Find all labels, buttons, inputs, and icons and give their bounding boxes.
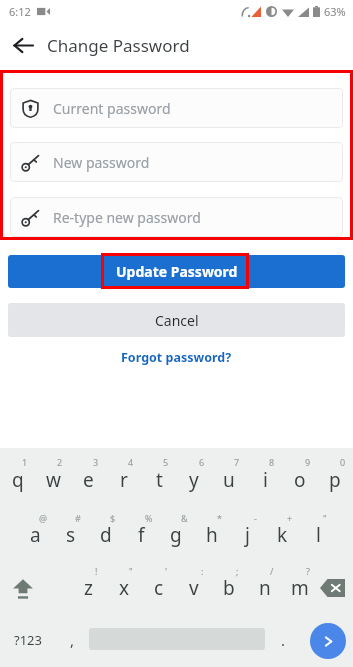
staticText: Update Password bbox=[116, 262, 238, 281]
staticText: ?123 bbox=[14, 631, 42, 649]
button[interactable]: Backspace bbox=[311, 565, 353, 611]
staticText: 0 bbox=[340, 456, 346, 468]
staticText: r bbox=[120, 467, 128, 493]
staticText: 7 bbox=[234, 456, 240, 468]
staticText: i bbox=[263, 467, 268, 493]
staticText: w bbox=[46, 467, 61, 493]
button[interactable]: Back bbox=[6, 28, 40, 62]
staticText: , bbox=[70, 630, 75, 650]
staticText: : bbox=[201, 565, 204, 577]
staticText: " bbox=[323, 512, 327, 524]
staticText: 9 bbox=[305, 456, 311, 468]
staticText: p bbox=[329, 467, 341, 493]
staticText: 63% bbox=[324, 4, 346, 19]
staticText: 3 bbox=[93, 456, 99, 468]
staticText: m bbox=[291, 575, 309, 601]
staticText: d bbox=[100, 522, 112, 548]
staticText: $ bbox=[110, 512, 116, 524]
button[interactable]: Shift bbox=[1, 565, 45, 611]
staticText: x bbox=[119, 575, 130, 601]
button[interactable]: Forgot password? bbox=[0, 346, 353, 368]
staticText: 6 bbox=[199, 456, 205, 468]
staticText: ' bbox=[165, 565, 168, 577]
button[interactable]: , bbox=[56, 618, 88, 662]
staticText: u bbox=[223, 467, 235, 493]
button[interactable]: Cancel bbox=[8, 303, 345, 337]
staticText: l bbox=[316, 522, 321, 548]
staticText: " bbox=[129, 565, 133, 577]
staticText: j bbox=[245, 522, 250, 548]
staticText: h bbox=[206, 522, 218, 548]
staticText: / bbox=[270, 565, 274, 577]
staticText: b bbox=[223, 575, 235, 601]
button[interactable]: . bbox=[266, 618, 300, 662]
staticText: ; bbox=[236, 565, 239, 577]
staticText: Forgot password? bbox=[121, 349, 232, 366]
staticText: 1 bbox=[22, 456, 28, 468]
staticText: z bbox=[84, 575, 93, 601]
staticText: k bbox=[277, 522, 288, 548]
staticText: 4 bbox=[128, 456, 134, 468]
staticText: y bbox=[189, 467, 199, 493]
staticText: Current password bbox=[53, 99, 171, 118]
staticText: g bbox=[170, 522, 182, 548]
button[interactable]: Re-type new password bbox=[10, 197, 343, 237]
button[interactable]: New password bbox=[10, 142, 343, 182]
button[interactable]: Update Password bbox=[8, 255, 345, 288]
staticText: f bbox=[138, 522, 145, 548]
staticText: n bbox=[259, 575, 271, 601]
staticText: c bbox=[154, 575, 164, 601]
staticText: v bbox=[189, 575, 199, 601]
staticText: @ bbox=[39, 512, 48, 524]
staticText: 6:12 bbox=[9, 4, 31, 19]
button[interactable]: Enter bbox=[310, 623, 346, 659]
button[interactable]: ?123 bbox=[2, 618, 54, 662]
staticText: Change Password bbox=[47, 34, 190, 57]
staticText: s bbox=[66, 522, 76, 548]
staticText: 2 bbox=[57, 456, 63, 468]
staticText: . bbox=[281, 630, 286, 650]
button[interactable]: Current password bbox=[10, 88, 343, 128]
staticText: q bbox=[12, 467, 24, 493]
staticText: o bbox=[294, 467, 306, 493]
staticText: 8 bbox=[269, 456, 275, 468]
staticText: + bbox=[287, 512, 293, 524]
staticText: - bbox=[254, 512, 257, 524]
staticText: % bbox=[145, 512, 153, 524]
staticText: a bbox=[30, 522, 41, 548]
staticText: ! bbox=[95, 565, 98, 577]
staticText: Re-type new password bbox=[53, 208, 201, 227]
staticText: 5 bbox=[163, 456, 169, 468]
staticText: Cancel bbox=[155, 311, 199, 330]
staticText: * bbox=[217, 512, 222, 524]
staticText: # bbox=[75, 512, 81, 524]
staticText: e bbox=[83, 467, 94, 493]
staticText: New password bbox=[53, 153, 150, 172]
staticText: t bbox=[156, 467, 163, 493]
staticText: & bbox=[181, 512, 188, 524]
staticText: ? bbox=[306, 565, 310, 577]
